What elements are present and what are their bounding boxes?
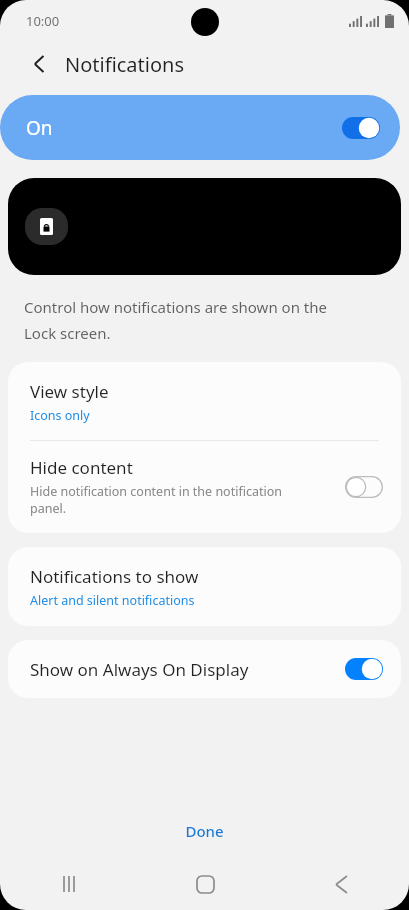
staticText: Hide content bbox=[30, 456, 133, 479]
staticText: Alert and silent notifications bbox=[30, 592, 195, 609]
staticText: Notifications to show bbox=[30, 565, 199, 588]
button[interactable]: Back bbox=[273, 858, 409, 910]
staticText: Icons only bbox=[30, 407, 90, 424]
staticText: Lock screen. bbox=[24, 323, 111, 343]
button[interactable]: Done bbox=[159, 813, 250, 849]
staticText: panel. bbox=[30, 500, 67, 517]
button[interactable]: Recent apps bbox=[0, 858, 137, 910]
button[interactable]: Hide content bbox=[8, 441, 401, 533]
button[interactable]: View style bbox=[8, 362, 401, 440]
staticText: 10:00 bbox=[26, 12, 60, 30]
staticText: On bbox=[26, 115, 53, 141]
staticText: Hide notification content in the notific… bbox=[30, 483, 282, 500]
button[interactable]: Home bbox=[137, 858, 273, 910]
button[interactable]: On bbox=[0, 95, 400, 160]
staticText: Show on Always On Display bbox=[30, 658, 345, 681]
staticText: Notifications bbox=[65, 51, 184, 78]
button[interactable]: Back bbox=[22, 47, 56, 81]
button[interactable]: Show on Always On Display bbox=[8, 640, 401, 698]
button[interactable]: Notifications to show bbox=[8, 547, 401, 626]
staticText: Control how notifications are shown on t… bbox=[24, 297, 327, 317]
staticText: Done bbox=[185, 821, 224, 841]
staticText: View style bbox=[30, 380, 109, 403]
